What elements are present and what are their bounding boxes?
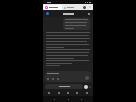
- button[interactable]: Reload: [84, 85, 88, 89]
- button[interactable]: Nav: [66, 97, 71, 102]
- button[interactable]: Nav: [79, 97, 84, 102]
- button[interactable]: Toolbar item: [65, 90, 71, 96]
- button[interactable]: [63, 5, 77, 10]
- button[interactable]: New chat: [88, 13, 90, 15]
- button[interactable]: Nav: [52, 97, 57, 102]
- button[interactable]: Voice input: [45, 71, 91, 82]
- button[interactable]: Toolbar item: [74, 90, 80, 96]
- button[interactable]: Menu: [46, 12, 49, 15]
- button[interactable]: Toolbar item: [46, 90, 52, 96]
- button[interactable]: [44, 5, 62, 10]
- button[interactable]: Voice input: [85, 76, 89, 80]
- button[interactable]: [45, 84, 83, 89]
- button[interactable]: Toolbar item: [56, 90, 62, 96]
- button[interactable]: Toolbar item: [84, 90, 90, 96]
- button[interactable]: Account: [83, 6, 86, 9]
- button[interactable]: [63, 18, 90, 30]
